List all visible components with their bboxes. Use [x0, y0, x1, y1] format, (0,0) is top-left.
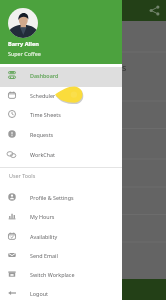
- staticText: Requests: [30, 131, 54, 138]
- staticText: Barry Allen: [8, 40, 39, 48]
- button[interactable]: Switch Workplace: [0, 264, 122, 284]
- staticText: My Hours: [30, 213, 55, 220]
- button[interactable]: Profile & Settings: [0, 187, 122, 207]
- staticText: Switch Workplace: [30, 271, 75, 278]
- staticText: Availability: [30, 233, 58, 240]
- button[interactable]: WorkChat: [0, 144, 122, 164]
- staticText: Scheduler: [30, 92, 56, 99]
- staticText: s: [122, 61, 127, 73]
- button[interactable]: Time Sheets: [0, 104, 122, 124]
- staticText: WorkChat: [30, 151, 55, 158]
- staticText: Send Email: [30, 252, 58, 259]
- staticText: Profile & Settings: [30, 194, 74, 201]
- button[interactable]: Logout: [0, 283, 122, 300]
- button[interactable]: Requests: [0, 124, 122, 144]
- button[interactable]: Dashboard: [0, 65, 122, 85]
- button[interactable]: Availability: [0, 226, 122, 246]
- staticText: Super Coffee: [8, 50, 41, 57]
- staticText: Logout: [30, 290, 48, 297]
- staticText: Time Sheets: [30, 111, 61, 118]
- button[interactable]: Share: [148, 4, 161, 17]
- button[interactable]: Send Email: [0, 245, 122, 265]
- button[interactable]: My Hours: [0, 206, 122, 226]
- staticText: User Tools: [9, 172, 36, 179]
- button[interactable]: Scheduler: [0, 85, 122, 105]
- staticText: Dashboard: [30, 72, 59, 79]
